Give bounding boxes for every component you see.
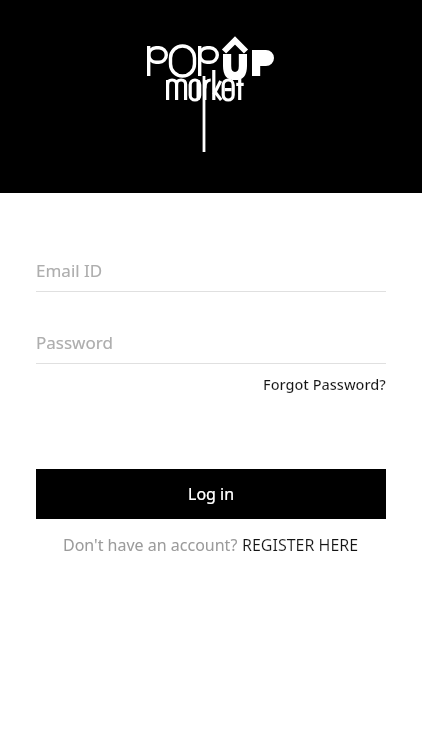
button[interactable]: Forgot Password? bbox=[263, 371, 386, 397]
button[interactable]: Email ID bbox=[36, 259, 386, 292]
staticText: REGISTER HERE bbox=[242, 534, 359, 556]
button[interactable]: Password bbox=[36, 331, 386, 364]
button[interactable]: Register here bbox=[242, 534, 359, 556]
staticText: Forgot Password? bbox=[263, 374, 386, 394]
staticText: Password bbox=[36, 331, 113, 354]
staticText: Don't have an account? bbox=[63, 534, 242, 556]
staticText: Email ID bbox=[36, 259, 103, 282]
staticText: Log in bbox=[188, 483, 235, 505]
button[interactable]: Log in bbox=[36, 469, 386, 519]
